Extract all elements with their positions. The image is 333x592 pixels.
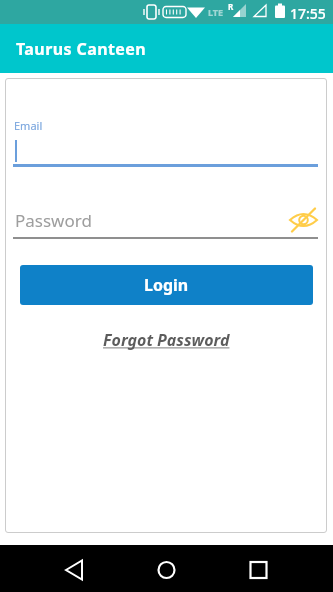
button[interactable] <box>290 208 318 232</box>
button[interactable]: Forgot Password <box>103 329 230 351</box>
staticText: LTE <box>208 6 224 18</box>
button[interactable]: Password <box>13 198 323 238</box>
button[interactable]: Email <box>13 106 323 168</box>
button[interactable] <box>0 545 111 592</box>
staticText: Password <box>15 209 92 232</box>
button[interactable] <box>111 545 222 592</box>
button[interactable]: Login <box>20 265 313 305</box>
staticText: Login <box>144 274 189 296</box>
button[interactable] <box>222 545 333 592</box>
staticText: Email <box>14 118 43 133</box>
staticText: 17:55 <box>290 4 326 23</box>
staticText: Taurus Canteen <box>16 38 146 60</box>
staticText: R <box>228 1 234 12</box>
